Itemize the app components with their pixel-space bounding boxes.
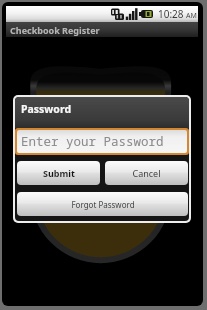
- staticText: Checkbook Register: [10, 24, 100, 36]
- staticText: Enter your Password: [21, 133, 164, 150]
- staticText: Submit: [43, 167, 75, 179]
- staticText: Password: [21, 102, 72, 116]
- button[interactable]: Submit: [17, 161, 100, 185]
- staticText: AM: [186, 11, 197, 21]
- staticText: Cancel: [132, 167, 161, 179]
- button[interactable]: Enter your Password: [17, 130, 187, 153]
- button[interactable]: Cancel: [105, 161, 188, 185]
- button[interactable]: Forgot Password: [17, 192, 188, 216]
- staticText: Forgot Password: [71, 199, 135, 210]
- staticText: 10:28: [158, 7, 184, 21]
